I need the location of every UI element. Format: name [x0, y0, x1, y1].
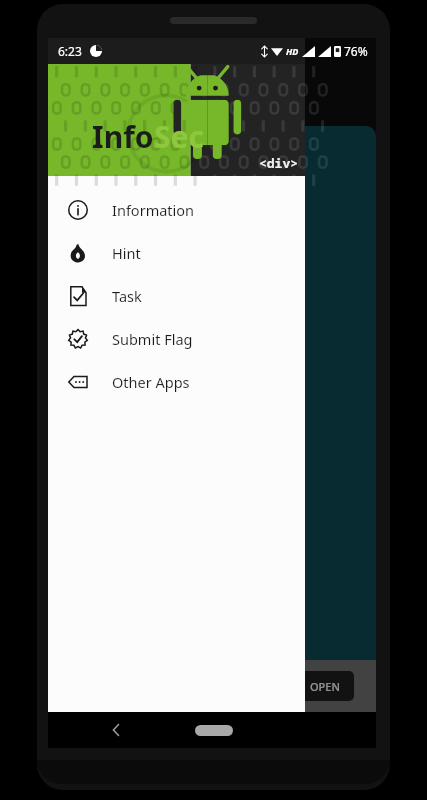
button[interactable]: OPEN	[296, 671, 354, 701]
button[interactable]: Task	[48, 274, 305, 317]
button[interactable]: Submit Flag	[48, 317, 305, 360]
staticText: ned to a	[74, 278, 128, 297]
staticText: Submit Flag	[112, 329, 193, 349]
button[interactable]: Information	[48, 188, 305, 231]
staticText: <div>	[259, 154, 299, 172]
button[interactable]: Home	[193, 712, 235, 748]
staticText: 6:23	[58, 43, 82, 59]
staticText: ommon in	[74, 344, 142, 363]
staticText: OPEN	[310, 679, 340, 694]
staticText: Info	[92, 116, 154, 157]
staticText: logies,	[74, 366, 117, 385]
staticText: ions within	[74, 322, 146, 341]
staticText: Hint	[112, 243, 141, 263]
staticText: HD	[286, 45, 299, 57]
staticText: both.	[74, 388, 109, 407]
button[interactable]: Other Apps	[48, 360, 305, 403]
staticText: 76%	[344, 43, 368, 59]
staticText: Information	[112, 200, 195, 220]
staticText: Other Apps	[112, 372, 190, 392]
staticText: Sec	[154, 116, 204, 157]
staticText: Task	[112, 286, 142, 306]
staticText: for use as	[74, 300, 139, 319]
staticText: MAC	[74, 256, 105, 275]
button[interactable]: Back	[98, 712, 134, 748]
button[interactable]: Hint	[48, 231, 305, 274]
